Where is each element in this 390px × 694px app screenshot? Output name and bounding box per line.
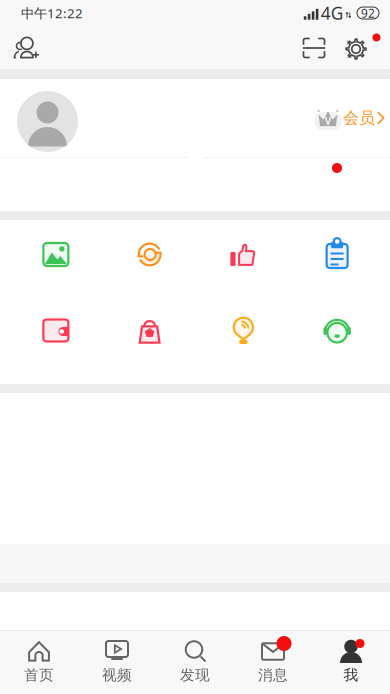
button[interactable]: 我 — [312, 630, 390, 694]
button[interactable]: 点赞 — [196, 220, 290, 296]
button[interactable]: 相册 — [9, 220, 103, 296]
staticText: 发现 — [180, 666, 210, 684]
button[interactable]: 发现 — [156, 630, 234, 694]
button[interactable]: Profile photo — [17, 87, 78, 148]
button[interactable]: 回收 — [103, 220, 197, 296]
staticText: V — [324, 113, 331, 128]
button[interactable]: 订单 — [290, 220, 384, 296]
button[interactable]: 首页 — [0, 630, 78, 694]
button[interactable]: 视频 — [78, 630, 156, 694]
staticText: 92 — [361, 5, 375, 21]
button[interactable]: 客服 — [290, 296, 384, 372]
button[interactable]: 商城 — [103, 296, 197, 372]
button[interactable]: 消息 — [234, 630, 312, 694]
staticText: 会员 — [343, 108, 375, 128]
button[interactable]: Scan — [292, 26, 336, 69]
staticText: 首页 — [24, 666, 54, 684]
button[interactable]: 钱包 — [9, 296, 103, 372]
staticText: 视频 — [102, 666, 132, 684]
button[interactable]: V — [315, 98, 385, 138]
button[interactable]: 创作 — [196, 296, 290, 372]
staticText: 中午12:22 — [21, 4, 83, 22]
button[interactable]: Settings — [336, 26, 380, 69]
staticText: 4G — [321, 1, 344, 24]
staticText: 消息 — [258, 666, 288, 684]
button[interactable]: Add friends — [2, 26, 52, 69]
staticText: 我 — [343, 666, 358, 684]
